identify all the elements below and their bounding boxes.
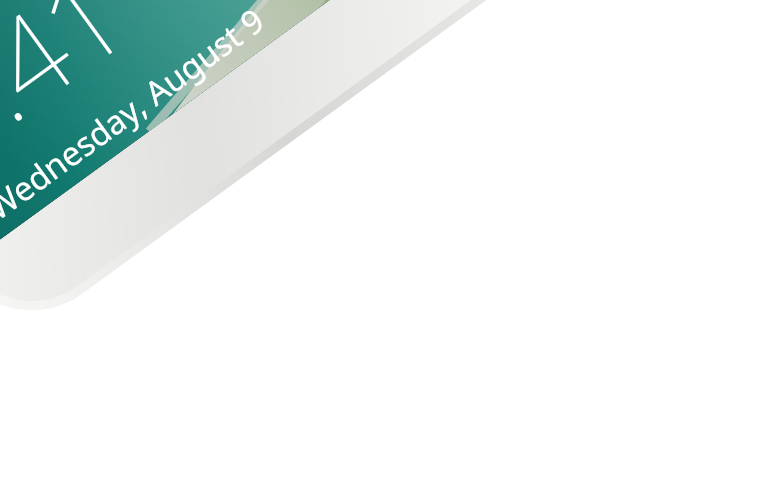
staticText: Wednesday, August 9 <box>0 0 273 230</box>
staticText: 9:41 <box>0 0 155 194</box>
